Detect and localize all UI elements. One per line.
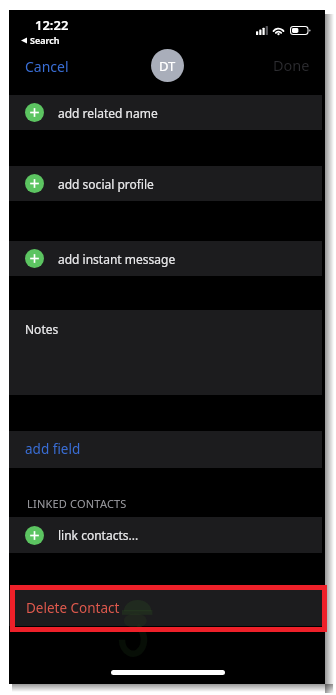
button[interactable]: add field bbox=[9, 431, 322, 468]
button[interactable]: add related name bbox=[9, 95, 322, 130]
staticText: Search bbox=[30, 34, 60, 46]
staticText: add field bbox=[25, 440, 81, 458]
button[interactable]: add instant message bbox=[9, 241, 322, 276]
other: Cellular signal strength bbox=[256, 26, 268, 35]
staticText: 12:22 bbox=[35, 16, 69, 34]
button[interactable]: Done bbox=[273, 55, 310, 75]
button[interactable]: add social profile bbox=[9, 166, 322, 201]
button[interactable]: Edit contact photo bbox=[151, 49, 184, 82]
staticText: Delete Contact bbox=[26, 599, 120, 617]
staticText: link contacts... bbox=[58, 527, 139, 543]
staticText: add instant message bbox=[58, 251, 176, 267]
staticText: Notes bbox=[25, 321, 59, 337]
staticText: LINKED CONTACTS bbox=[27, 496, 127, 511]
button[interactable]: Notes bbox=[9, 310, 322, 395]
staticText: add related name bbox=[58, 105, 158, 121]
button[interactable]: link contacts... bbox=[9, 517, 322, 553]
other: Wi-Fi bbox=[272, 26, 285, 35]
button[interactable]: Cancel bbox=[25, 57, 69, 76]
staticText: DT bbox=[159, 57, 176, 75]
staticText: add social profile bbox=[58, 176, 154, 192]
other: Battery bbox=[290, 26, 310, 35]
button[interactable]: Delete Contact bbox=[9, 590, 322, 626]
button[interactable]: Search bbox=[21, 34, 60, 46]
